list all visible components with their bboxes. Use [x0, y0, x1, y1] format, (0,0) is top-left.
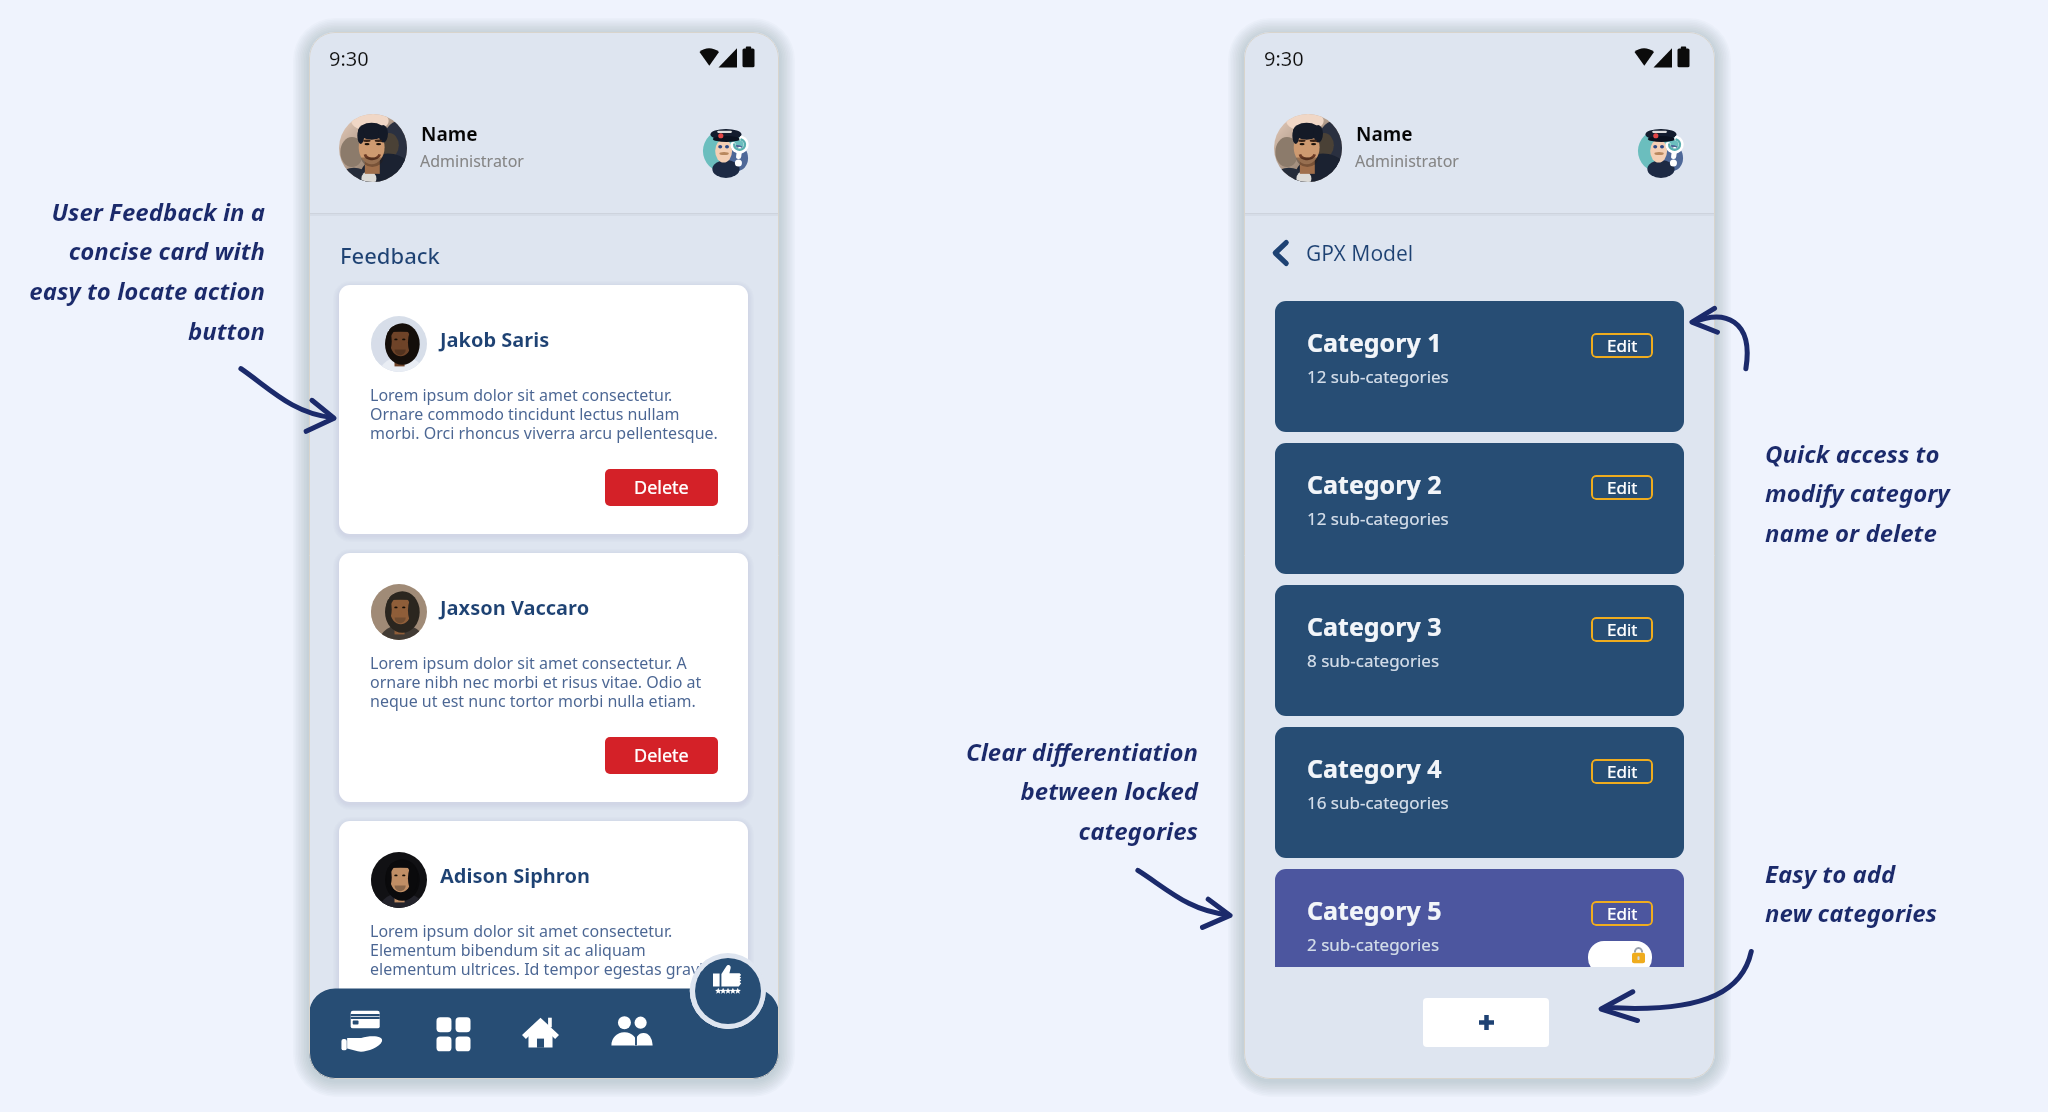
staticText: 12 sub-categories	[1307, 507, 1449, 530]
staticText: Edit	[1607, 334, 1638, 357]
button[interactable]: Delete	[605, 469, 718, 506]
staticText: Edit	[1607, 760, 1638, 783]
button[interactable]: Add category	[1423, 998, 1549, 1047]
staticText: Category 5	[1307, 893, 1442, 927]
button[interactable]: Edit	[1591, 759, 1653, 784]
staticText: 9:30	[329, 45, 369, 72]
staticText: Lorem ipsum dolor sit amet consectetur. …	[370, 384, 748, 444]
staticText: Delete	[634, 743, 689, 768]
staticText: Category 1	[1307, 325, 1442, 359]
button[interactable]: Edit	[1591, 901, 1653, 926]
staticText: Edit	[1607, 902, 1638, 925]
button[interactable]: Jakob Saris	[339, 285, 748, 534]
staticText: Quick access to modify category name or …	[1765, 437, 2005, 549]
button[interactable]: Edit	[1591, 475, 1653, 500]
staticText: Name	[421, 121, 478, 147]
staticText: Category 3	[1307, 609, 1442, 643]
staticText: Category 4	[1307, 751, 1442, 785]
staticText: Clear differentiation between locked cat…	[938, 735, 1198, 847]
staticText: Jaxson Vaccaro	[440, 594, 590, 621]
staticText: Jakob Saris	[440, 326, 550, 353]
button[interactable]: Edit	[1591, 333, 1653, 358]
button[interactable]: Adison Siphron	[339, 821, 748, 1070]
button[interactable]: Category 2	[1275, 443, 1684, 574]
staticText: Edit	[1607, 476, 1638, 499]
button[interactable]: Category 1	[1275, 301, 1684, 432]
staticText: Administrator	[420, 150, 524, 172]
button[interactable]: Delete	[605, 737, 718, 774]
button[interactable]: Rate us	[695, 958, 761, 1024]
button[interactable]: Category 4	[1275, 727, 1684, 858]
staticText: Edit	[1607, 618, 1638, 641]
button[interactable]: Locked	[1588, 941, 1652, 967]
staticText: 9:30	[1264, 45, 1304, 72]
staticText: Name	[1356, 121, 1413, 147]
staticText: User Feedback in a concise card with eas…	[12, 195, 265, 347]
button[interactable]: Edit	[1591, 617, 1653, 642]
staticText: Administrator	[1355, 150, 1459, 172]
staticText: 2 sub-categories	[1307, 933, 1440, 956]
staticText: Feedback	[340, 240, 440, 270]
button[interactable]: Category 5	[1275, 869, 1684, 967]
button[interactable]: Payments	[337, 1005, 389, 1057]
staticText: 8 sub-categories	[1307, 649, 1440, 672]
button[interactable]: Home	[514, 1006, 566, 1058]
button[interactable]: Jaxson Vaccaro	[339, 553, 748, 802]
staticText: 16 sub-categories	[1307, 791, 1449, 814]
staticText: GPX Model	[1306, 239, 1414, 268]
staticText: Lorem ipsum dolor sit amet consectetur. …	[370, 652, 748, 712]
button[interactable]: People	[606, 1007, 658, 1059]
staticText: Easy to add new categories	[1765, 857, 2005, 929]
button[interactable]: Dashboard	[427, 1006, 479, 1058]
staticText: Delete	[634, 475, 689, 500]
staticText: Category 2	[1307, 467, 1442, 501]
staticText: Lorem ipsum dolor sit amet consectetur. …	[370, 920, 748, 980]
button[interactable]: Category 3	[1275, 585, 1684, 716]
staticText: Adison Siphron	[440, 862, 590, 889]
button[interactable]: GPX Model	[1268, 236, 1414, 270]
staticText: 12 sub-categories	[1307, 365, 1449, 388]
